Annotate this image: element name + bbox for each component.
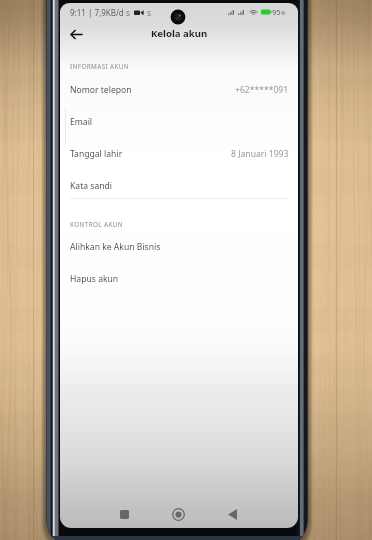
staticText: 95 [272,7,281,17]
button[interactable]: Home [165,501,191,527]
button[interactable]: Back [65,23,87,45]
button[interactable]: Alihkan ke Akun Bisnis [60,231,298,262]
staticText: INFORMASI AKUN [70,62,129,71]
staticText: KONTROL AKUN [70,220,123,229]
staticText: +62*****091 [235,84,289,96]
button[interactable]: Hapus akun [60,263,298,294]
button[interactable]: Kata sandi [60,170,298,201]
button[interactable]: Email [60,106,298,137]
staticText: Email [70,116,93,128]
staticText: Kata sandi [70,180,113,192]
staticText: Kelola akun [151,27,208,40]
button[interactable]: Back [219,501,245,527]
button[interactable]: Recent apps [111,501,137,527]
staticText: Alihkan ke Akun Bisnis [70,241,161,253]
staticText: 9:11 | 7,9KB/d [70,7,124,18]
staticText: 8 Januari 1993 [231,148,289,160]
button[interactable]: Tanggal lahir [60,138,298,169]
staticText: Hapus akun [70,273,119,285]
button[interactable]: Nomor telepon [60,74,298,105]
staticText: S [147,8,152,18]
staticText: S [126,8,131,18]
staticText: Nomor telepon [70,84,132,96]
staticText: % [281,9,286,16]
staticText: Tanggal lahir [70,148,123,160]
